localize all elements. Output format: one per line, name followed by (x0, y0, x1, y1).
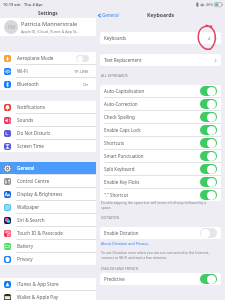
button[interactable]: Wallpaper (0, 201, 96, 213)
staticText: 4 (208, 35, 211, 41)
button[interactable]: Notifications (0, 101, 96, 113)
staticText: Auto-Capitalisation (104, 88, 145, 94)
button[interactable]: Touch ID & Passcode (0, 227, 96, 239)
staticText: "." Shortcut (104, 192, 129, 198)
staticText: ENGLISH AND FRENCH (101, 266, 139, 271)
staticText: Wi-Fi (17, 68, 28, 74)
button[interactable]: Off (76, 55, 89, 62)
button[interactable]: Sounds (0, 114, 96, 126)
button[interactable]: On (200, 190, 217, 200)
staticText: Double-tapping the space bar will insert… (101, 200, 214, 210)
staticText: Sounds (17, 117, 34, 123)
staticText: DICTATION (101, 215, 120, 220)
staticText: Auto-Correction (104, 101, 138, 107)
staticText: Patricia Mannerstrale (21, 20, 78, 28)
button[interactable]: Predictive (100, 273, 221, 285)
button[interactable]: On (200, 151, 217, 161)
staticText: Battery (17, 243, 34, 249)
staticText: Settings (38, 10, 58, 17)
button[interactable]: Battery (0, 240, 96, 252)
staticText: Keyboards (104, 35, 127, 41)
staticText: Touch ID & Passcode (17, 230, 63, 236)
button[interactable]: On (200, 274, 217, 284)
staticText: Aeroplane Mode (17, 55, 54, 61)
button[interactable]: On (200, 138, 217, 148)
staticText: PM (8, 24, 15, 30)
staticText: Enable Caps Lock (104, 127, 141, 133)
button[interactable]: Aeroplane Mode (0, 52, 96, 64)
button[interactable]: On (200, 99, 217, 109)
staticText: General (17, 165, 35, 171)
staticText: Notifications (17, 104, 45, 110)
button[interactable]: Auto-Capitalisation (100, 85, 221, 97)
button[interactable]: Split Keyboard (100, 163, 221, 175)
staticText: Apple ID, iCloud, iTunes & App St… (21, 29, 80, 34)
staticText: TP-LINK (74, 69, 89, 74)
button[interactable]: Keyboards (100, 32, 221, 44)
button[interactable]: Shortcuts (100, 137, 221, 149)
button[interactable]: On (200, 112, 217, 122)
staticText: ALL KEYBOARDS (101, 73, 128, 78)
button[interactable]: Wi-Fi (0, 65, 96, 77)
staticText: Thu 4 Apr (24, 2, 43, 7)
staticText: iTunes & App Store (17, 281, 59, 287)
button[interactable]: Off (200, 228, 217, 238)
staticText: Screen Time (17, 143, 44, 149)
staticText: Enable Key Flicks (104, 179, 140, 185)
button[interactable]: Enable Dictation (100, 227, 221, 239)
staticText: Check Spelling (104, 114, 135, 120)
staticText: On (83, 82, 89, 87)
button[interactable]: Enable Key Flicks (100, 176, 221, 188)
staticText: Do Not Disturb (17, 130, 51, 136)
button[interactable]: Siri & Search (0, 214, 96, 226)
button[interactable]: Wallet & Apple Pay (0, 291, 96, 300)
staticText: Privacy (17, 256, 33, 262)
staticText: Bluetooth (17, 81, 39, 87)
staticText: Control Centre (17, 178, 50, 184)
button[interactable]: Do Not Disturb (0, 127, 96, 139)
staticText: 10:19 am (3, 2, 21, 7)
button[interactable]: Screen Time (0, 140, 96, 152)
staticText: Split Keyboard (104, 166, 135, 172)
button[interactable]: Bluetooth (0, 78, 96, 90)
staticText: Shortcuts (104, 140, 125, 146)
button[interactable]: Control Centre (0, 175, 96, 187)
staticText: Wallet & Apple Pay (17, 294, 59, 300)
staticText: 46% (206, 2, 214, 7)
button[interactable]: On (200, 164, 217, 174)
button[interactable]: Display & Brightness (0, 188, 96, 200)
button[interactable]: On (200, 177, 217, 187)
staticText: Predictive (104, 276, 125, 282)
button[interactable]: PM (0, 18, 96, 36)
staticText: Enable Dictation (104, 230, 139, 236)
button[interactable]: Text Replacement (100, 54, 221, 66)
staticText: Text Replacement (104, 57, 142, 63)
button[interactable]: iTunes & App Store (0, 278, 96, 290)
button[interactable]: Privacy (0, 253, 96, 265)
button[interactable]: Check Spelling (100, 111, 221, 123)
button[interactable]: General (96, 12, 119, 18)
staticText: To use Dictation even when you are not c… (101, 250, 213, 260)
button[interactable]: Smart Punctuation (100, 150, 221, 162)
staticText: Siri & Search (17, 217, 45, 223)
button[interactable]: About Dictation and Privacy… (101, 241, 151, 246)
staticText: Keyboards (147, 11, 175, 18)
staticText: General (102, 12, 119, 18)
staticText: Wallpaper (17, 204, 40, 210)
staticText: Smart Punctuation (104, 153, 144, 159)
button[interactable]: General (0, 162, 96, 174)
staticText: Display & Brightness (17, 191, 63, 197)
button[interactable]: Enable Caps Lock (100, 124, 221, 136)
button[interactable]: On (200, 86, 217, 96)
button[interactable]: On (200, 125, 217, 135)
button[interactable]: Auto-Correction (100, 98, 221, 110)
button[interactable]: "." Shortcut (100, 189, 221, 201)
